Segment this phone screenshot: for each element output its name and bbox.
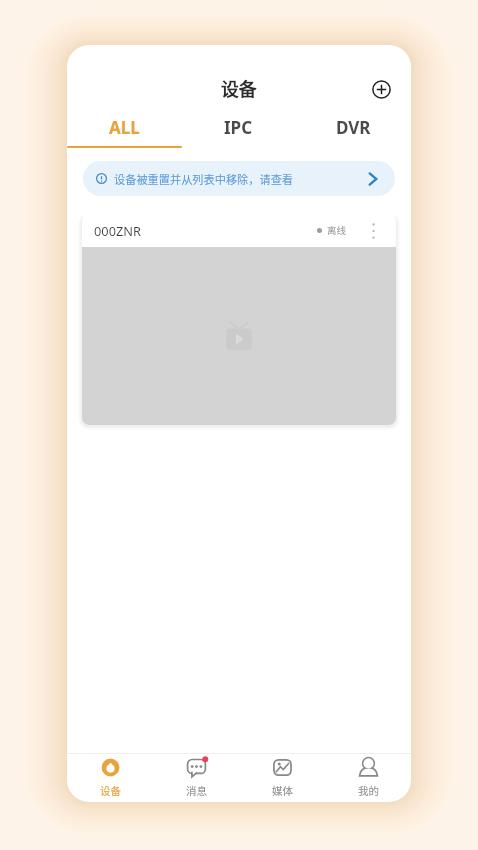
button[interactable]: 消息 <box>153 754 239 802</box>
button[interactable]: 设备被重置并从列表中移除，请查看 <box>83 161 395 196</box>
button[interactable]: DVR <box>296 110 411 148</box>
staticText: 离线 <box>327 223 347 237</box>
staticText: 设备 <box>221 75 257 101</box>
button[interactable]: Add device <box>368 76 394 102</box>
staticText: 媒体 <box>272 783 293 798</box>
staticText: 000ZNR <box>94 222 141 239</box>
button[interactable]: IPC <box>181 110 296 148</box>
staticText: 设备被重置并从列表中移除，请查看 <box>114 171 294 187</box>
button[interactable]: More options <box>365 222 382 239</box>
staticText: 设备 <box>100 783 121 798</box>
button[interactable]: ALL <box>67 110 181 148</box>
button[interactable]: 000ZNR <box>82 213 396 425</box>
staticText: ALL <box>109 116 140 139</box>
button[interactable]: 媒体 <box>239 754 325 802</box>
button[interactable]: 我的 <box>325 754 411 802</box>
button[interactable]: 设备 <box>67 754 153 802</box>
staticText: DVR <box>336 116 371 139</box>
staticText: 我的 <box>358 783 379 798</box>
staticText: IPC <box>224 116 253 139</box>
staticText: 消息 <box>186 783 207 798</box>
